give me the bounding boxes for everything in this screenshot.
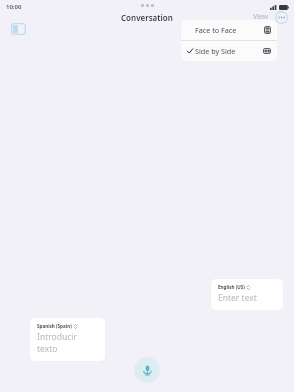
button[interactable]: Show sidebar [8, 19, 28, 39]
button[interactable]: View [250, 10, 272, 24]
staticText: Enter text [218, 292, 257, 304]
button[interactable]: Side by Side [181, 41, 277, 61]
button[interactable]: More options [275, 11, 288, 24]
staticText: 10:00 [6, 3, 22, 11]
button[interactable]: Face to Face [181, 20, 277, 40]
staticText: Introducir texto [37, 331, 99, 355]
staticText: English (US) [218, 284, 245, 290]
staticText: Spanish (Spain) [37, 323, 72, 329]
button[interactable]: English (US) [211, 279, 283, 310]
staticText: Side by Side [195, 46, 236, 56]
staticText: View [253, 12, 269, 22]
staticText: Face to Face [195, 25, 237, 35]
button[interactable]: Spanish (Spain) [30, 318, 105, 361]
button[interactable]: Start listening [134, 357, 160, 383]
staticText: Conversation [121, 12, 173, 23]
